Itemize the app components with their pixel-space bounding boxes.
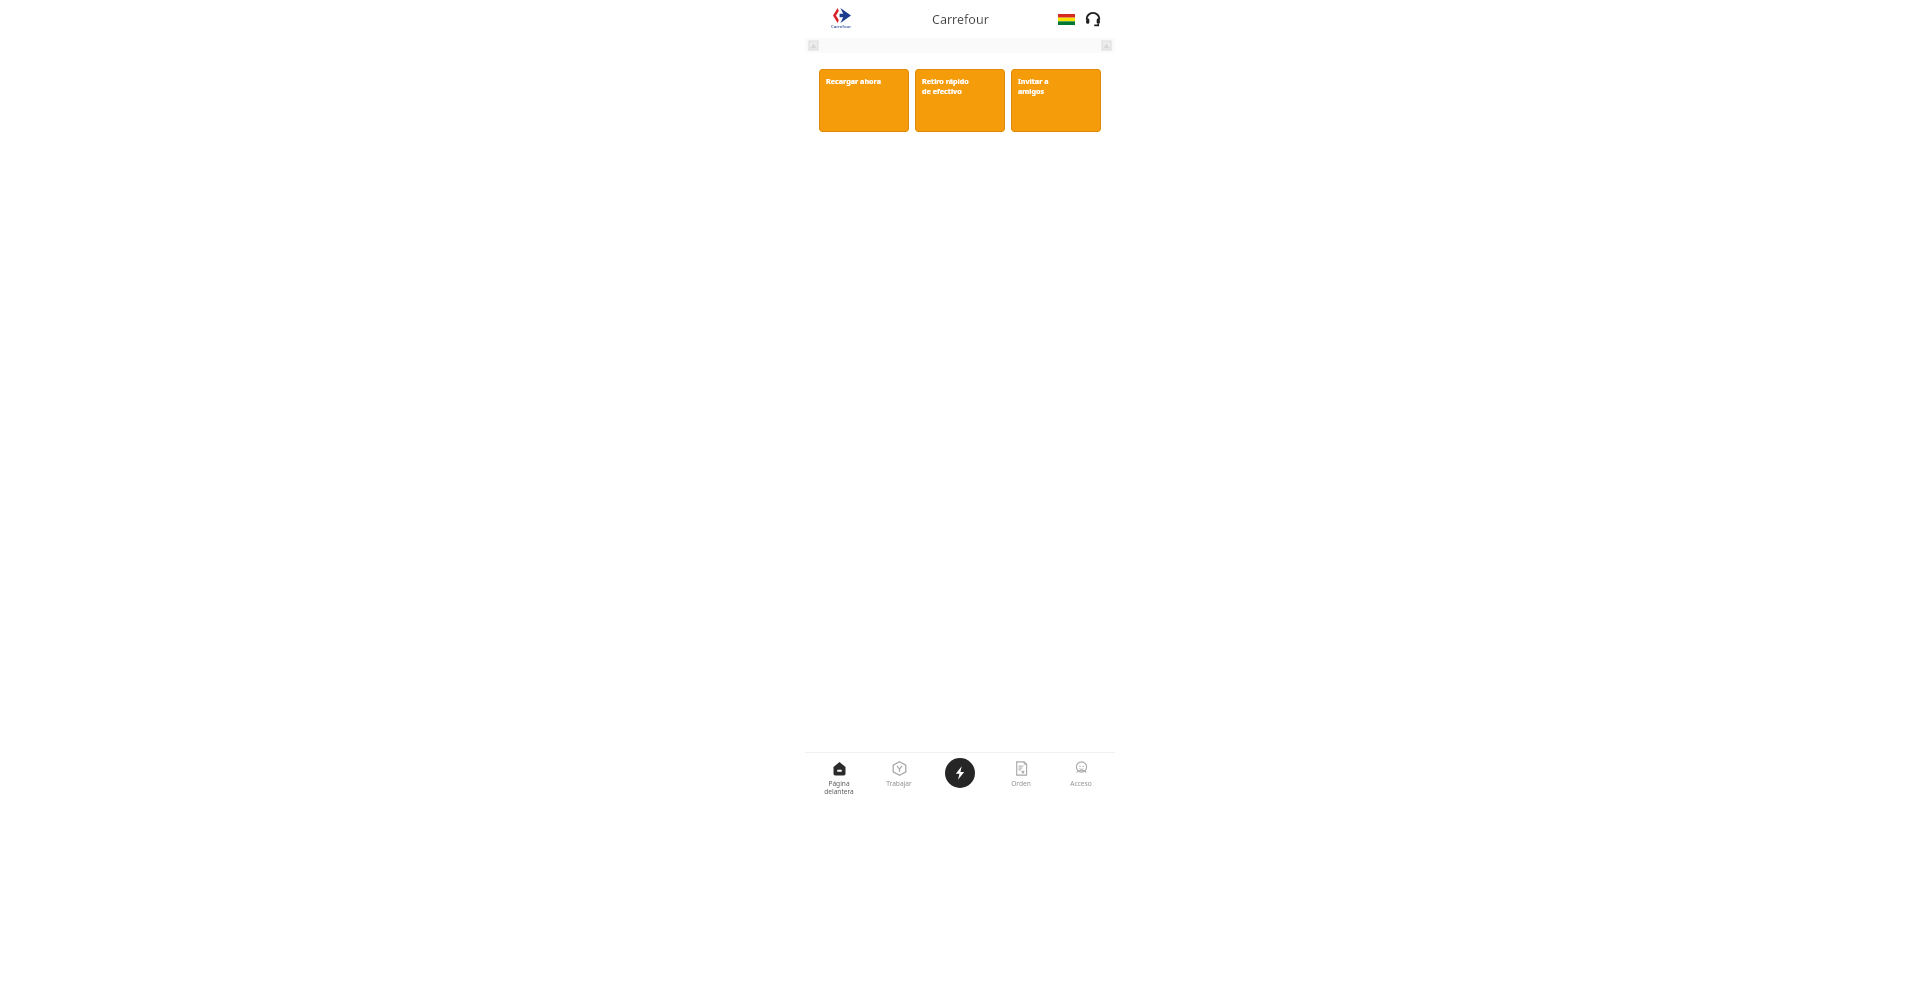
staticText: Trabajar xyxy=(886,779,912,788)
staticText: Carrefour xyxy=(932,11,989,28)
button[interactable]: Trabajar xyxy=(872,758,926,788)
staticText: Recargar ahora xyxy=(826,76,881,86)
button[interactable]: Retiro rápido de efectivo xyxy=(915,69,1005,132)
staticText: Carrefour xyxy=(831,24,852,30)
staticText: Orden xyxy=(1011,779,1031,788)
button[interactable]: Orden xyxy=(994,758,1048,788)
button[interactable]: Página delantera xyxy=(812,758,866,796)
button[interactable]: Carrefour xyxy=(826,6,856,32)
button[interactable]: Soporte xyxy=(1083,9,1103,29)
button[interactable]: Idioma Bolivia xyxy=(1056,11,1076,27)
staticText: Página delantera xyxy=(824,779,854,796)
staticText: Invitar a amigos xyxy=(1018,76,1049,96)
button[interactable]: Acción rápida xyxy=(945,758,975,788)
staticText: Retiro rápido de efectivo xyxy=(922,76,969,96)
staticText: Acceso xyxy=(1070,779,1092,788)
button[interactable]: Recargar ahora xyxy=(819,69,909,132)
button[interactable]: Acceso xyxy=(1054,758,1108,788)
button[interactable]: Invitar a amigos xyxy=(1011,69,1101,132)
